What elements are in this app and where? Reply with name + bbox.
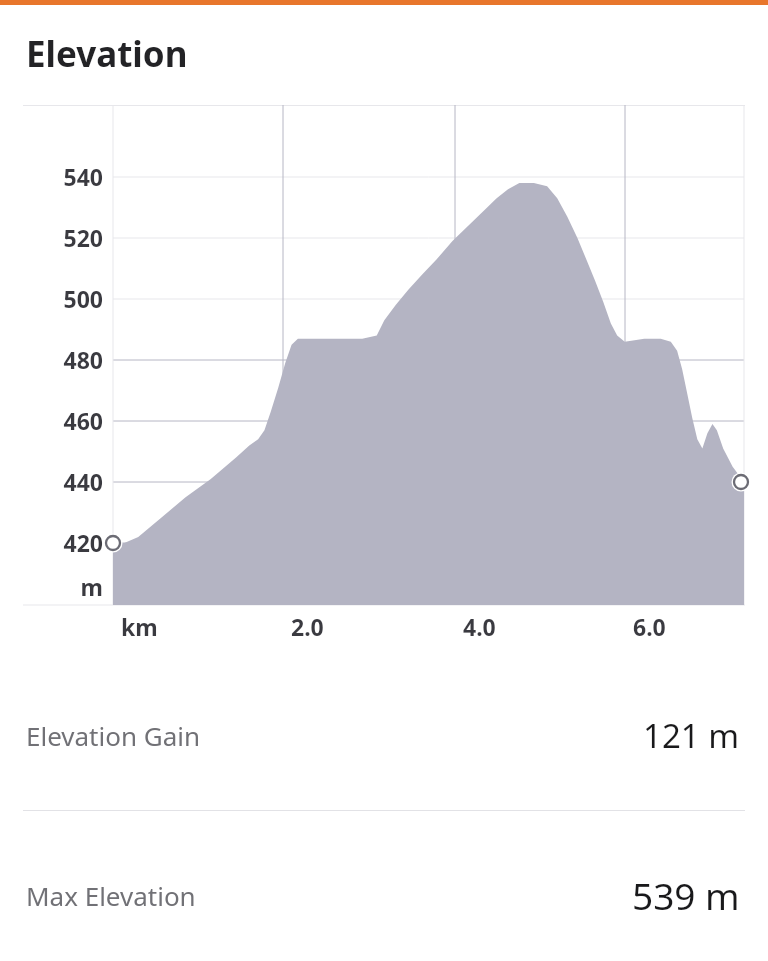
staticText: m [80, 571, 103, 602]
button[interactable]: Elevation Gain [0, 680, 768, 790]
other: Elevation profile chart [23, 105, 745, 650]
staticText: 121 m [643, 713, 740, 758]
staticText: 520 [63, 222, 103, 253]
staticText: km [121, 611, 158, 642]
staticText: 480 [63, 344, 103, 375]
staticText: 540 [63, 161, 103, 192]
staticText: Elevation Gain [26, 718, 201, 753]
staticText: Elevation [26, 30, 188, 78]
staticText: 6.0 [633, 611, 666, 642]
staticText: 420 [63, 527, 103, 558]
staticText: 440 [63, 466, 103, 497]
staticText: 500 [63, 283, 103, 314]
staticText: Max Elevation [26, 878, 196, 913]
staticText: 539 m [632, 870, 740, 920]
staticText: 460 [63, 405, 103, 436]
button[interactable]: Max Elevation [0, 840, 768, 950]
staticText: 2.0 [291, 611, 324, 642]
staticText: 4.0 [463, 611, 496, 642]
